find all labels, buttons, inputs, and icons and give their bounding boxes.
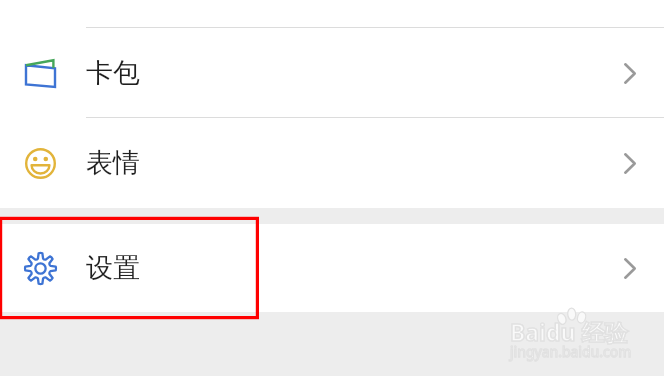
other: Open bbox=[624, 153, 636, 174]
staticText: 卡包 bbox=[86, 56, 140, 90]
staticText: Baidu 经验 bbox=[510, 316, 628, 347]
staticText: jingyan.baidu.com bbox=[510, 342, 632, 361]
other: Open bbox=[624, 63, 636, 84]
staticText: 设置 bbox=[86, 251, 140, 285]
button[interactable]: 卡包 bbox=[0, 28, 664, 118]
staticText: 表情 bbox=[86, 146, 140, 180]
staticText: Baidu 经验 bbox=[510, 316, 628, 347]
other: Open bbox=[624, 258, 636, 279]
staticText: jingyan.baidu.com bbox=[510, 342, 632, 361]
button[interactable]: 设置 bbox=[0, 224, 664, 312]
button[interactable]: 表情 bbox=[0, 118, 664, 208]
